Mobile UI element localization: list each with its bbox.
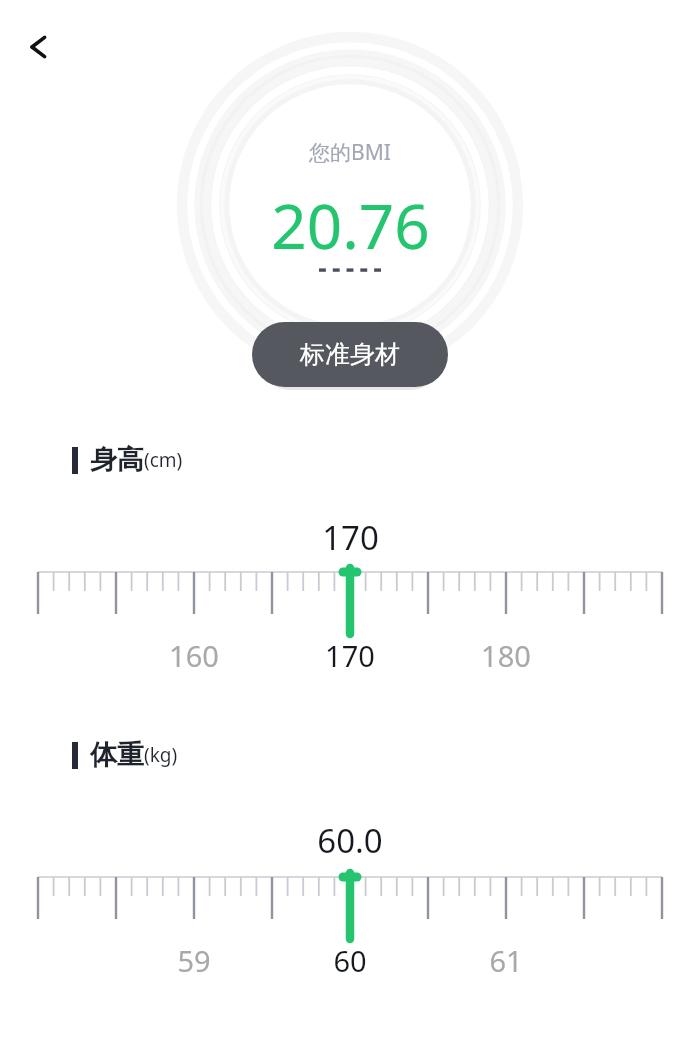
staticText: 60	[333, 941, 367, 980]
staticText: 标准身材	[300, 339, 400, 370]
staticText: 体重	[90, 738, 144, 772]
staticText: 170	[322, 515, 379, 560]
button[interactable]	[0, 875, 700, 937]
button[interactable]: 身高	[72, 443, 183, 477]
staticText: (kg)	[144, 742, 178, 768]
button[interactable]: Back	[14, 20, 68, 74]
staticText: 您的BMI	[309, 138, 391, 167]
staticText: 170	[325, 636, 375, 675]
staticText: 61	[489, 941, 523, 980]
staticText: 180	[481, 636, 531, 675]
button[interactable]	[0, 570, 700, 632]
staticText: 60.0	[317, 818, 383, 863]
button[interactable]: 体重	[72, 738, 178, 772]
staticText: 59	[177, 941, 211, 980]
staticText: 20.76	[271, 183, 430, 267]
staticText: (cm)	[144, 447, 183, 473]
staticText: 160	[169, 636, 219, 675]
staticText: 身高	[90, 443, 144, 477]
button[interactable]: 标准身材	[252, 322, 448, 387]
